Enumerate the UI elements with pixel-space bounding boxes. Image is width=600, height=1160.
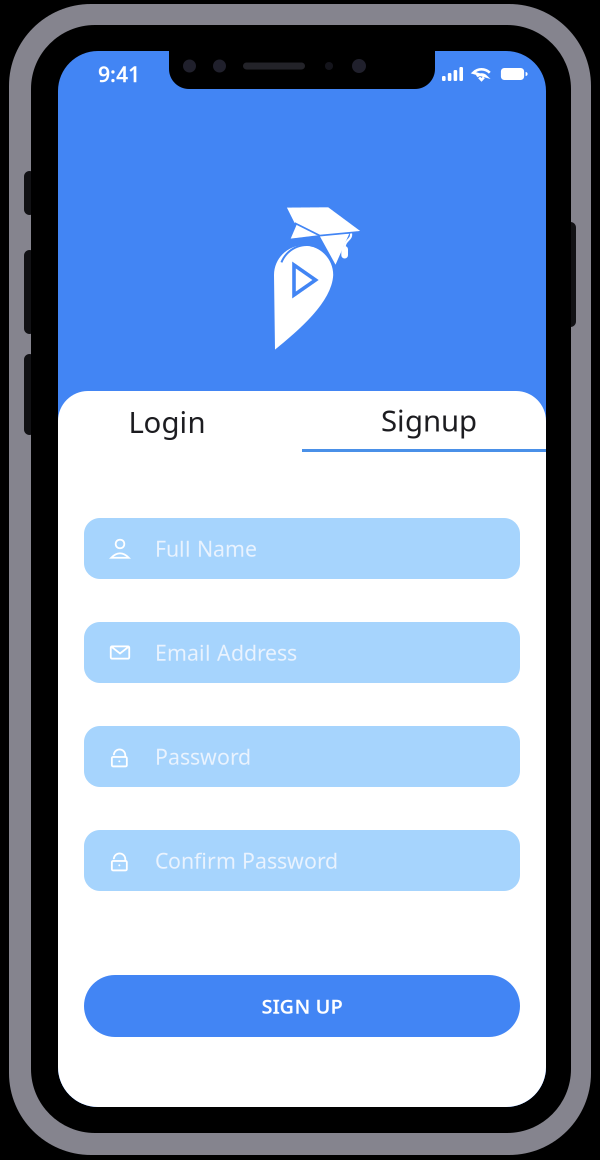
button[interactable]: SIGN UP <box>84 975 520 1037</box>
staticText: Login <box>128 402 205 441</box>
staticText: Full Name <box>155 534 257 563</box>
staticText: Confirm Password <box>155 846 338 875</box>
button[interactable]: Signup <box>302 391 546 452</box>
staticText: 9:41 <box>98 60 140 88</box>
button[interactable]: Confirm Password <box>84 830 520 891</box>
staticText: Password <box>155 742 251 771</box>
button[interactable]: Full Name <box>84 518 520 579</box>
button[interactable]: Password <box>84 726 520 787</box>
button[interactable]: Login <box>58 391 302 452</box>
staticText: Signup <box>381 400 477 439</box>
staticText: Email Address <box>155 638 297 667</box>
staticText: SIGN UP <box>261 993 342 1019</box>
button[interactable]: Email Address <box>84 622 520 683</box>
